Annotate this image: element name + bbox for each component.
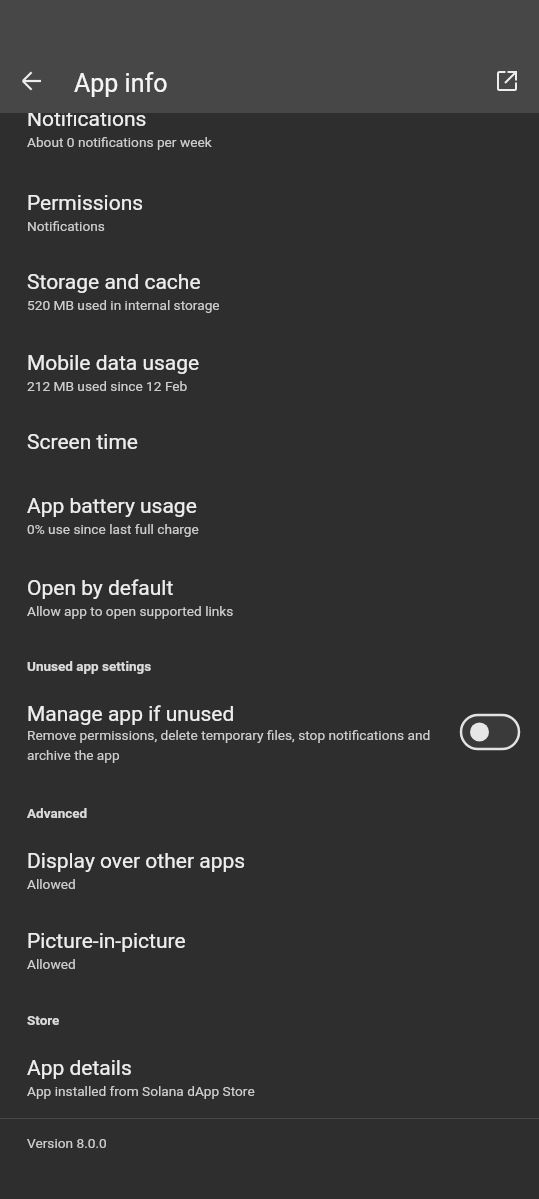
button[interactable]: App details (0, 1043, 539, 1119)
staticText: About 0 notifications per week (27, 134, 212, 150)
staticText: Notifications (27, 218, 105, 234)
staticText: Picture-in-picture (27, 929, 186, 954)
staticText: Version 8.0.0 (27, 1135, 107, 1151)
button[interactable]: Screen time (0, 417, 539, 481)
button[interactable]: Storage and cache (0, 257, 539, 338)
button[interactable] (8, 57, 56, 105)
staticText: Open by default (27, 576, 174, 601)
staticText: App installed from Solana dApp Store (27, 1083, 255, 1099)
staticText: 520 MB used in internal storage (27, 297, 220, 313)
staticText: Mobile data usage (27, 351, 200, 376)
staticText: Allowed (27, 876, 76, 892)
staticText: Screen time (27, 430, 138, 455)
button[interactable]: Picture-in-picture (0, 916, 539, 995)
staticText: Remove permissions, delete temporary fil… (27, 727, 475, 763)
button[interactable]: Open by default (0, 563, 539, 641)
staticText: Store (27, 1012, 60, 1028)
button[interactable]: App battery usage (0, 481, 539, 563)
staticText: Storage and cache (27, 270, 201, 295)
staticText: Advanced (27, 805, 88, 821)
button[interactable] (459, 713, 519, 751)
staticText: 212 MB used since 12 Feb (27, 378, 188, 394)
staticText: Permissions (27, 191, 144, 216)
staticText: Display over other apps (27, 849, 246, 874)
staticText: Unused app settings (27, 658, 152, 674)
staticText: Allowed (27, 956, 76, 972)
staticText: Notifications (27, 107, 147, 132)
button[interactable]: Mobile data usage (0, 338, 539, 417)
button[interactable]: Display over other apps (0, 836, 539, 916)
staticText: Allow app to open supported links (27, 603, 234, 619)
staticText: App details (27, 1056, 132, 1081)
staticText: Manage app if unused (27, 702, 235, 727)
staticText: App battery usage (27, 494, 197, 519)
button[interactable]: Permissions (0, 178, 539, 257)
staticText: 0% use since last full charge (27, 521, 199, 537)
button[interactable] (483, 57, 531, 105)
staticText: App info (74, 69, 168, 98)
button[interactable]: Notifications (0, 94, 539, 178)
button[interactable]: Manage app if unused (0, 689, 539, 788)
